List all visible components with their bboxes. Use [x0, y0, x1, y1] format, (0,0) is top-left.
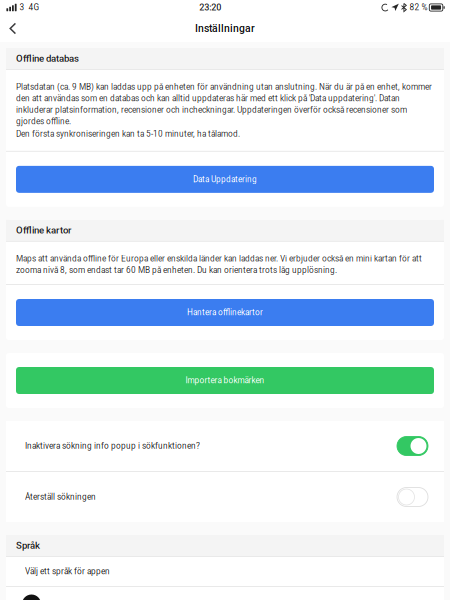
staticText: 23:20 — [199, 2, 221, 13]
staticText: Inställningar — [195, 22, 255, 35]
staticText: Data Uppdatering — [193, 174, 257, 184]
button[interactable]: Back — [0, 15, 29, 41]
staticText: 4G — [28, 3, 39, 12]
staticText: Återställ sökningen — [25, 492, 96, 502]
button[interactable]: Importera bokmärken — [16, 367, 434, 394]
staticText: Maps att använda offline för Europa elle… — [16, 254, 422, 275]
button[interactable]: Data Uppdatering — [16, 166, 434, 193]
staticText: Den första synkroniseringen kan ta 5-10 … — [16, 129, 240, 139]
staticText: 3 — [19, 3, 24, 12]
staticText: Offline databas — [16, 53, 79, 64]
staticText: Platsdatan (ca. 9 MB) kan laddas upp på … — [16, 82, 432, 126]
button[interactable]: Hantera offlinekartor — [16, 299, 434, 326]
staticText: Välj ett språk för appen — [25, 567, 110, 576]
button[interactable]: Återställ sökningen — [6, 472, 444, 522]
staticText: 82 % — [409, 3, 427, 12]
staticText: Språk — [16, 540, 40, 551]
button[interactable]: Deutsch — [6, 587, 444, 600]
staticText: Inaktivera sökning info popup i sökfunkt… — [25, 441, 200, 451]
button[interactable]: Inaktivera sökning info popup i sökfunkt… — [6, 421, 444, 471]
staticText: Offline kartor — [16, 225, 71, 236]
staticText: Hantera offlinekartor — [187, 308, 263, 317]
staticText: Importera bokmärken — [185, 376, 264, 385]
